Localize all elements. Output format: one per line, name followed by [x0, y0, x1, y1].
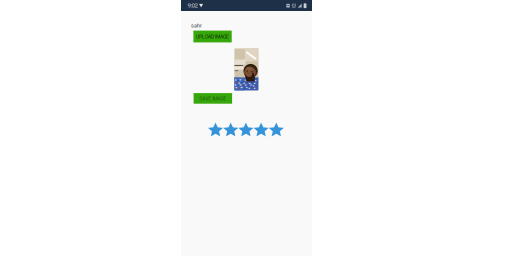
button[interactable]: SAVE IMAGE [194, 93, 232, 104]
staticText: SAVE IMAGE [199, 95, 226, 102]
staticText: UPLOAD IMAGE [196, 33, 229, 40]
staticText: sahr [191, 23, 202, 29]
button[interactable]: UPLOAD IMAGE [193, 31, 232, 42]
staticText: 9:02 [187, 2, 197, 9]
